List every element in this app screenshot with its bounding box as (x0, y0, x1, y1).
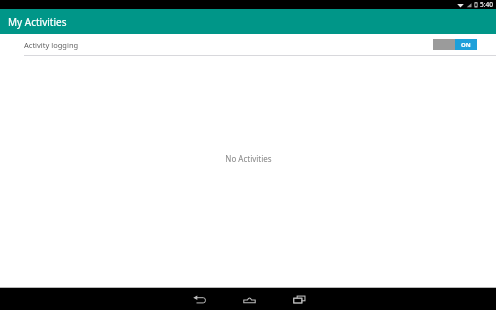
button[interactable]: Activity logging (0, 34, 496, 55)
staticText: My Activities (8, 15, 67, 29)
staticText: Activity logging (24, 40, 79, 50)
button[interactable]: Back (186, 288, 212, 310)
staticText: No Activities (225, 153, 272, 164)
staticText: 5:40 (480, 0, 493, 9)
staticText: ON (461, 41, 471, 49)
button[interactable]: Home (236, 288, 262, 310)
button[interactable]: Recent apps (286, 288, 312, 310)
button[interactable]: Activity logging toggle, on (433, 39, 477, 50)
